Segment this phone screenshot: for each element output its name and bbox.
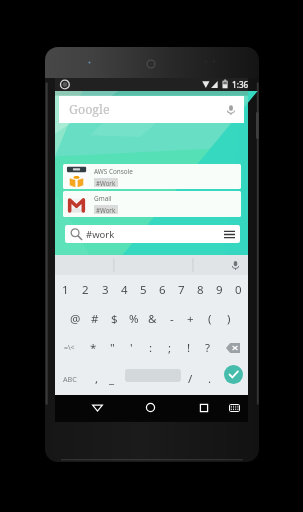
button[interactable]: % bbox=[124, 304, 143, 333]
button[interactable]: @ bbox=[65, 304, 85, 333]
button[interactable]: =\< bbox=[55, 333, 83, 362]
staticText: #Work bbox=[96, 206, 116, 214]
button[interactable]: AWS Console bbox=[63, 164, 241, 189]
staticText: % bbox=[129, 311, 139, 327]
other: Menu bbox=[224, 230, 235, 239]
staticText: " bbox=[110, 340, 115, 356]
button[interactable]: 5 bbox=[134, 275, 153, 304]
button[interactable]: #work bbox=[65, 225, 240, 243]
staticText: Gmail bbox=[94, 194, 112, 203]
staticText: & bbox=[148, 311, 157, 327]
staticText: * bbox=[90, 340, 97, 356]
other: Voice input bbox=[230, 260, 241, 271]
button[interactable]: 8 bbox=[191, 275, 210, 304]
button[interactable]: : bbox=[141, 333, 160, 362]
button[interactable]: . bbox=[200, 362, 219, 395]
button[interactable]: ? bbox=[198, 333, 217, 362]
button[interactable]: Switch keyboard bbox=[221, 395, 247, 420]
staticText: + bbox=[187, 311, 194, 327]
staticText: , bbox=[95, 371, 99, 387]
staticText: 5 bbox=[140, 282, 147, 298]
button[interactable]: Done bbox=[224, 365, 243, 384]
button[interactable]: 0 bbox=[229, 275, 248, 304]
button[interactable]: 6 bbox=[153, 275, 172, 304]
staticText: ; bbox=[168, 340, 172, 356]
button[interactable]: ; bbox=[160, 333, 179, 362]
staticText: 7 bbox=[178, 282, 185, 298]
button[interactable]: - bbox=[162, 304, 181, 333]
staticText: 8 bbox=[197, 282, 204, 298]
staticText: / bbox=[188, 371, 193, 387]
staticText: AWS Console bbox=[94, 167, 133, 176]
staticText: . bbox=[208, 371, 212, 387]
button[interactable]: ) bbox=[219, 304, 238, 333]
button[interactable]: ABC bbox=[55, 362, 85, 395]
staticText: ' bbox=[130, 340, 133, 356]
button[interactable]: 7 bbox=[172, 275, 191, 304]
button[interactable]: 1 bbox=[55, 275, 75, 304]
staticText: # bbox=[91, 311, 99, 327]
staticText: 2 bbox=[82, 282, 89, 298]
button[interactable]: Back bbox=[84, 395, 110, 420]
button[interactable]: , bbox=[87, 362, 106, 395]
button[interactable]: * bbox=[83, 333, 103, 362]
staticText: ABC bbox=[63, 374, 77, 384]
button[interactable]: & bbox=[143, 304, 162, 333]
staticText: =\< bbox=[64, 343, 75, 353]
staticText: - bbox=[170, 311, 174, 327]
button[interactable]: _ bbox=[102, 362, 121, 395]
staticText: ) bbox=[227, 311, 231, 327]
staticText: ( bbox=[208, 311, 212, 327]
button[interactable]: 9 bbox=[210, 275, 229, 304]
staticText: 3 bbox=[102, 282, 109, 298]
button[interactable]: " bbox=[103, 333, 122, 362]
staticText: : bbox=[149, 340, 153, 356]
staticText: @ bbox=[70, 311, 81, 327]
button[interactable]: # bbox=[85, 304, 105, 333]
button[interactable]: 2 bbox=[75, 275, 95, 304]
staticText: 4 bbox=[121, 282, 128, 298]
staticText: Google bbox=[69, 101, 110, 118]
button[interactable]: Home bbox=[137, 395, 163, 420]
button[interactable]: ! bbox=[179, 333, 198, 362]
button[interactable]: 4 bbox=[115, 275, 134, 304]
staticText: 0 bbox=[235, 282, 242, 298]
staticText: 1:36 bbox=[232, 79, 249, 90]
staticText: 1 bbox=[62, 282, 69, 298]
staticText: _ bbox=[109, 371, 115, 387]
staticText: ! bbox=[187, 340, 191, 356]
other: Voice search bbox=[225, 104, 237, 116]
button[interactable]: Delete bbox=[217, 333, 248, 362]
staticText: 6 bbox=[159, 282, 166, 298]
button[interactable]: + bbox=[181, 304, 200, 333]
button[interactable]: 3 bbox=[95, 275, 115, 304]
staticText: #Work bbox=[96, 179, 116, 187]
staticText: ? bbox=[205, 340, 210, 356]
staticText: 9 bbox=[216, 282, 223, 298]
staticText: #work bbox=[86, 228, 115, 241]
button[interactable]: / bbox=[181, 362, 200, 395]
button[interactable]: ( bbox=[200, 304, 219, 333]
button[interactable]: ' bbox=[122, 333, 141, 362]
staticText: $ bbox=[111, 311, 118, 327]
button[interactable]: Google bbox=[59, 96, 244, 123]
button[interactable]: $ bbox=[105, 304, 124, 333]
button[interactable]: Recents bbox=[191, 395, 217, 420]
button[interactable]: Gmail bbox=[63, 191, 241, 217]
